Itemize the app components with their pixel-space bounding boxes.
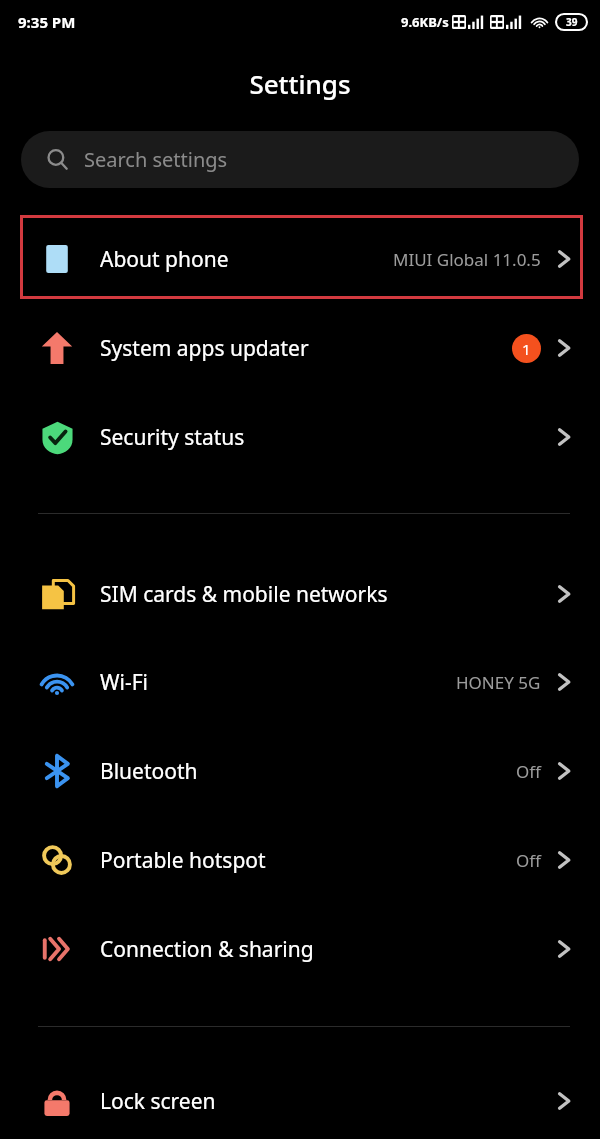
other: About phone highlighted [20,215,583,299]
staticText: HONEY 5G [456,671,541,694]
staticText: 1 [522,339,531,359]
button[interactable]: About phone [0,216,600,302]
staticText: Off [516,760,541,783]
staticText: Connection & sharing [100,935,314,964]
button[interactable]: Connection & sharing [0,906,600,992]
staticText: Settings [0,66,600,101]
staticText: MIUI Global 11.0.5 [393,248,541,271]
button[interactable]: Wi-Fi [0,639,600,725]
button[interactable]: Lock screen [0,1063,600,1139]
staticText: Off [516,849,541,872]
staticText: SIM cards & mobile networks [100,580,388,609]
staticText: 39 [566,15,578,29]
staticText: Wi-Fi [100,668,149,697]
staticText: System apps updater [100,334,309,363]
staticText: Lock screen [100,1087,216,1116]
staticText: About phone [100,245,229,274]
button[interactable]: System apps updater [0,305,600,391]
staticText: Bluetooth [100,757,198,786]
button[interactable]: SIM cards & mobile networks [0,551,600,637]
staticText: Security status [100,423,245,452]
staticText: 9.6KB/s [401,13,449,31]
staticText: Search settings [84,146,228,173]
button[interactable]: Security status [0,394,600,480]
staticText: Portable hotspot [100,846,266,875]
button[interactable]: Bluetooth [0,728,600,814]
staticText: 9:35 PM [18,12,76,32]
button[interactable]: Portable hotspot [0,817,600,903]
button[interactable]: Search settings [21,131,579,188]
